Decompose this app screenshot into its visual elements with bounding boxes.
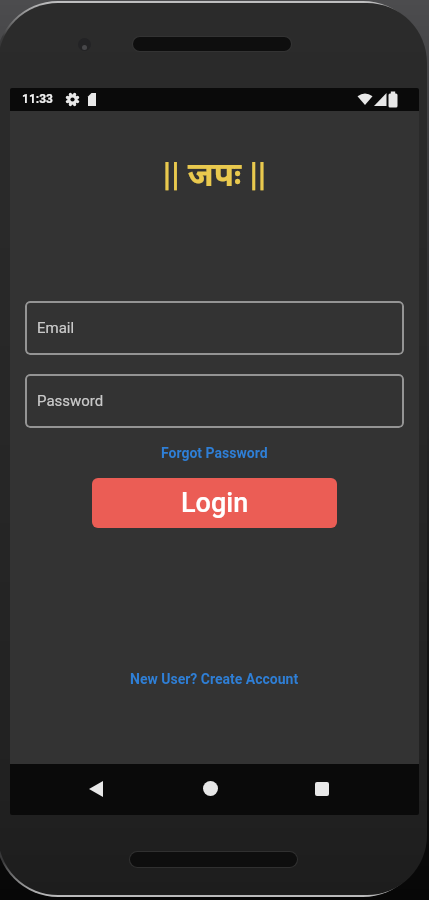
button[interactable]: New User? Create Account	[130, 671, 299, 687]
staticText: Email	[37, 319, 75, 337]
staticText: 11:33	[22, 92, 53, 106]
button[interactable]	[203, 781, 218, 796]
staticText: Login	[181, 487, 249, 519]
button[interactable]: Forgot Password	[161, 445, 268, 461]
button[interactable]	[315, 782, 329, 796]
staticText: Password	[37, 392, 104, 410]
button[interactable]	[89, 781, 103, 797]
button[interactable]: Login	[92, 478, 337, 528]
button[interactable]: Email	[25, 301, 404, 355]
staticText: || जपः ||	[10, 151, 419, 196]
button[interactable]: Password	[25, 374, 404, 428]
